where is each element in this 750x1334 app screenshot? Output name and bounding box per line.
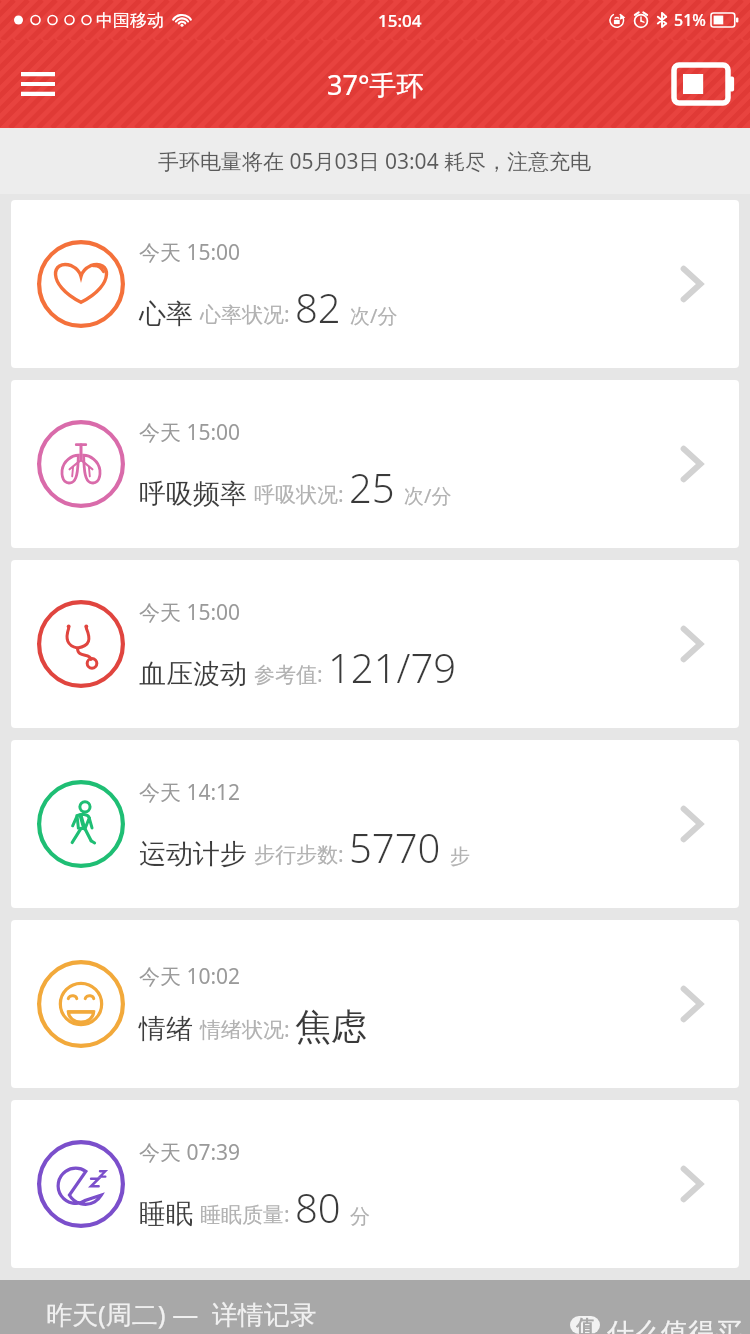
staticText: 运动计步 <box>139 837 247 871</box>
staticText: 25 <box>349 460 395 514</box>
button[interactable]: 今天 15:00 <box>11 200 739 368</box>
staticText: 15:04 <box>378 9 422 32</box>
staticText: 睡眠质量: <box>200 1200 290 1229</box>
button[interactable]: 今天 15:00 <box>11 560 739 728</box>
staticText: 37°手环 <box>327 66 424 103</box>
staticText: 今天 15:00 <box>139 418 241 447</box>
staticText: 参考值: <box>254 660 323 689</box>
staticText: 情绪状况: <box>200 1015 290 1044</box>
staticText: 血压波动 <box>139 657 247 691</box>
staticText: 心率 <box>139 297 193 331</box>
staticText: 80 <box>295 1180 341 1234</box>
button[interactable]: 今天 14:12 <box>11 740 739 908</box>
staticText: 分 <box>350 1204 370 1229</box>
staticText: 睡眠 <box>139 1197 193 1231</box>
staticText: 值 <box>576 1316 594 1334</box>
staticText: 今天 14:12 <box>139 778 241 807</box>
button[interactable]: 今天 07:39 <box>11 1100 739 1268</box>
button[interactable]: 今天 10:02 <box>11 920 739 1088</box>
staticText: 呼吸频率 <box>139 477 247 511</box>
staticText: 情绪 <box>139 1012 193 1046</box>
staticText: 次/分 <box>350 302 398 329</box>
staticText: 今天 10:02 <box>139 962 241 991</box>
staticText: 中国移动 <box>96 10 164 31</box>
staticText: 今天 15:00 <box>139 238 241 267</box>
staticText: 步行步数: <box>254 840 344 869</box>
staticText: 步 <box>450 844 470 869</box>
staticText: 121/79 <box>328 640 457 694</box>
staticText: 次/分 <box>404 482 452 509</box>
button[interactable]: Menu <box>8 54 68 114</box>
staticText: 心率状况: <box>200 300 290 329</box>
staticText: 5770 <box>349 820 441 874</box>
staticText: 51% <box>674 9 706 31</box>
staticText: 焦虑 <box>295 1004 367 1049</box>
staticText: 什么值得买 <box>607 1316 742 1334</box>
staticText: 82 <box>295 280 341 334</box>
button[interactable]: Band battery <box>672 56 736 112</box>
staticText: 今天 15:00 <box>139 598 241 627</box>
staticText: 昨天(周二) — 详情记录 <box>46 1296 316 1332</box>
staticText: 手环电量将在 05月03日 03:04 耗尽，注意充电 <box>158 147 592 176</box>
staticText: 呼吸状况: <box>254 480 344 509</box>
button[interactable]: 今天 15:00 <box>11 380 739 548</box>
staticText: 今天 07:39 <box>139 1138 241 1167</box>
